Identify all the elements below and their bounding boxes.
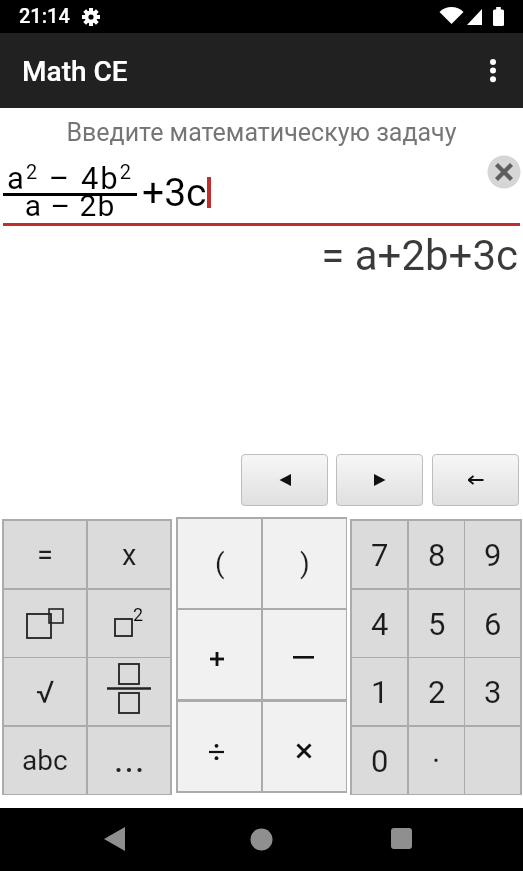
button[interactable]	[241, 454, 328, 506]
button[interactable]: 2	[409, 658, 464, 725]
button[interactable]: (	[178, 519, 261, 608]
button[interactable]: 6	[465, 590, 520, 657]
button[interactable]: 2	[88, 590, 170, 657]
staticText: 6	[484, 606, 502, 642]
staticText: =	[37, 538, 53, 572]
staticText: 8	[428, 537, 446, 573]
button[interactable]: 3	[465, 658, 520, 725]
staticText: +3c	[142, 170, 207, 216]
staticText: 0	[371, 743, 389, 779]
button[interactable]	[178, 610, 261, 699]
staticText: 2	[133, 604, 144, 625]
button[interactable]	[485, 59, 501, 83]
staticText: 5	[428, 606, 446, 642]
button[interactable]: 0	[352, 727, 407, 794]
staticText: 4	[371, 606, 389, 642]
button[interactable]	[4, 590, 86, 657]
button[interactable]	[88, 727, 170, 794]
staticText: a2 – 4b2	[3, 160, 137, 196]
button[interactable]: )	[263, 519, 346, 608]
staticText: 7	[371, 537, 389, 573]
staticText: )	[300, 547, 310, 580]
button[interactable]: 1	[352, 658, 407, 725]
staticText: (	[215, 547, 225, 580]
button[interactable]: 8	[409, 521, 464, 588]
button[interactable]	[391, 828, 412, 849]
button[interactable]: ·	[409, 727, 464, 794]
button[interactable]: √	[4, 658, 86, 725]
staticText: a – 2b	[3, 188, 137, 223]
button[interactable]: =	[4, 521, 86, 588]
staticText: 3	[484, 674, 502, 710]
staticText: Math CE	[22, 55, 128, 88]
staticText: Введите математическую задачу	[0, 118, 523, 147]
button[interactable]: x	[88, 521, 170, 588]
button[interactable]	[88, 658, 170, 725]
staticText: √	[36, 674, 55, 710]
button[interactable]	[250, 828, 273, 851]
button[interactable]: 4	[352, 590, 407, 657]
button[interactable]	[104, 827, 125, 851]
staticText: 2	[428, 674, 446, 710]
button[interactable]	[487, 155, 521, 189]
staticText: 9	[484, 537, 502, 573]
staticText: 1	[371, 674, 389, 710]
staticText: ·	[432, 743, 441, 779]
staticText: abc	[22, 744, 68, 777]
button[interactable]: abc	[4, 727, 86, 794]
staticText: = a+2b+3c	[0, 231, 518, 280]
staticText: 21:14	[19, 4, 70, 27]
button[interactable]	[432, 454, 519, 506]
button[interactable]: 9	[465, 521, 520, 588]
button[interactable]: 7	[352, 521, 407, 588]
button[interactable]: 5	[409, 590, 464, 657]
button[interactable]	[263, 610, 346, 699]
button[interactable]	[178, 702, 261, 791]
staticText: x	[122, 538, 137, 572]
button[interactable]	[263, 702, 346, 791]
button[interactable]	[336, 454, 423, 506]
